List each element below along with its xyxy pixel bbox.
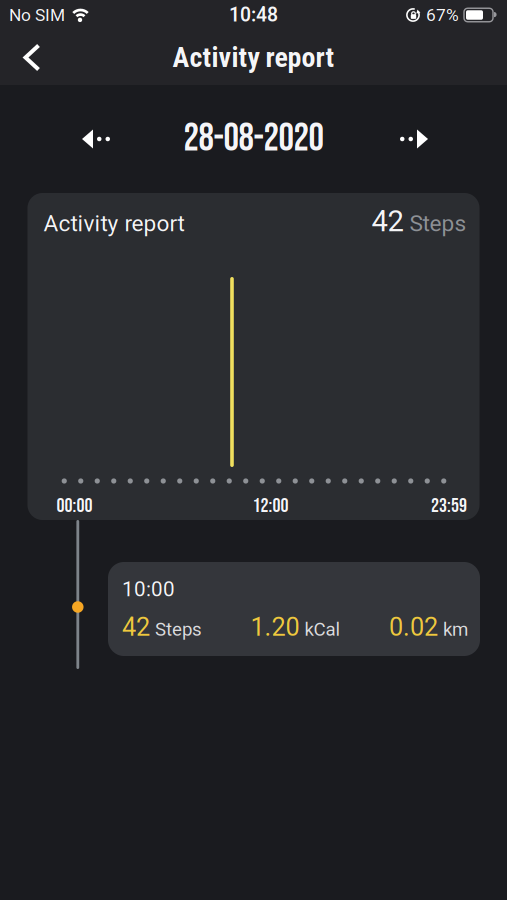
staticText: 23:59 (431, 494, 467, 518)
button[interactable]: 10:00 activity details (108, 562, 480, 656)
staticText: 67% (426, 5, 459, 25)
staticText: kCal (304, 618, 340, 640)
staticText: 12:00 (252, 494, 288, 518)
staticText: km (443, 618, 468, 640)
staticText: 10:48 (229, 4, 278, 26)
staticText: Steps (155, 618, 202, 640)
staticText: 28-08-2020 (183, 116, 323, 162)
button[interactable]: Back (0, 30, 61, 85)
staticText: Activity report (172, 41, 334, 74)
staticText: 10:00 (122, 577, 175, 601)
staticText: Activity report (43, 210, 184, 237)
staticText: 42 (122, 612, 150, 642)
button[interactable]: Next day (400, 129, 507, 148)
staticText: 1.20 (250, 612, 299, 642)
button[interactable]: Previous day (0, 129, 110, 148)
staticText: 42 (371, 204, 403, 238)
staticText: 00:00 (56, 494, 92, 518)
staticText: No SIM (9, 5, 65, 25)
staticText: 0.02 (389, 612, 438, 642)
staticText: Steps (403, 210, 466, 237)
